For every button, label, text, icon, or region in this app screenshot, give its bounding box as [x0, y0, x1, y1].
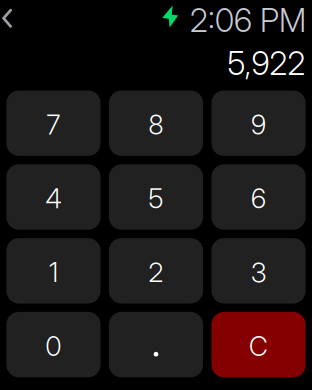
- staticText: 5,922: [227, 44, 305, 83]
- staticText: 4: [45, 182, 61, 215]
- button[interactable]: 5: [109, 164, 203, 230]
- button[interactable]: 4: [6, 164, 100, 230]
- button[interactable]: C: [211, 312, 306, 377]
- staticText: 9: [251, 109, 266, 141]
- staticText: 1: [49, 256, 58, 289]
- staticText: 3: [251, 256, 266, 289]
- button[interactable]: 7: [6, 90, 100, 156]
- button[interactable]: 9: [211, 90, 306, 156]
- button[interactable]: 8: [109, 90, 203, 156]
- staticText: C: [249, 330, 268, 362]
- button[interactable]: Decimal point: [109, 312, 203, 377]
- staticText: 6: [251, 182, 266, 215]
- button[interactable]: 3: [211, 238, 306, 303]
- staticText: 2:06 PM: [190, 1, 306, 40]
- staticText: 0: [45, 330, 61, 362]
- button[interactable]: Back: [0, 0, 26, 36]
- staticText: 8: [148, 109, 163, 141]
- button[interactable]: 6: [211, 164, 306, 230]
- staticText: 2: [148, 256, 163, 289]
- staticText: 5: [148, 182, 163, 215]
- button[interactable]: 1: [6, 238, 100, 303]
- button[interactable]: 0: [6, 312, 100, 377]
- staticText: 7: [46, 109, 60, 141]
- button[interactable]: 2: [109, 238, 203, 303]
